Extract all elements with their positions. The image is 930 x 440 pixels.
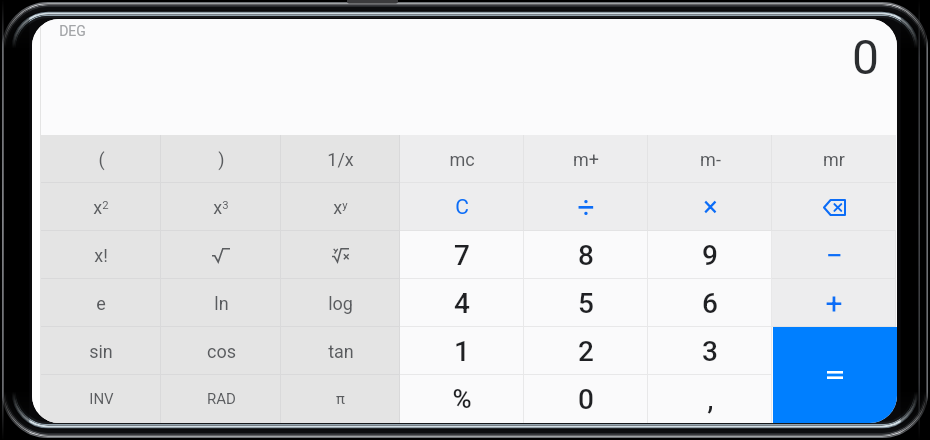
button[interactable]: mr	[772, 135, 896, 183]
button[interactable]: +	[772, 279, 896, 327]
staticText: 8	[578, 239, 594, 272]
staticText: 5	[578, 287, 594, 320]
button[interactable]: m+	[524, 135, 648, 183]
staticText: x3	[213, 197, 229, 218]
button[interactable]: 1	[400, 327, 524, 375]
staticText: x2	[93, 197, 109, 218]
staticText: sin	[89, 341, 113, 362]
button[interactable]: 2	[524, 327, 648, 375]
staticText: 0	[578, 383, 594, 416]
staticText: 0	[852, 29, 879, 85]
staticText: 3	[702, 335, 718, 368]
staticText: log	[328, 293, 353, 314]
button[interactable]: log	[281, 279, 400, 327]
button[interactable]: mc	[400, 135, 524, 183]
button[interactable]: ,	[648, 375, 772, 423]
staticText: ÷	[577, 190, 595, 225]
button[interactable]: sin	[41, 327, 161, 375]
staticText: π	[336, 390, 345, 408]
button[interactable]: 3	[648, 327, 772, 375]
staticText: m+	[573, 149, 599, 170]
button[interactable]: 5	[524, 279, 648, 327]
staticText: 1/x	[327, 149, 354, 170]
button[interactable]: RAD	[161, 375, 281, 423]
button[interactable]: Square root	[161, 231, 281, 279]
button[interactable]: x!	[41, 231, 161, 279]
staticText: +	[825, 286, 843, 321]
staticText: cos	[207, 341, 236, 362]
button[interactable]: x3	[161, 183, 281, 231]
button[interactable]: INV	[41, 375, 161, 423]
button[interactable]: 4	[400, 279, 524, 327]
button[interactable]: (	[41, 135, 161, 183]
staticText: %	[452, 384, 472, 414]
button[interactable]: 9	[648, 231, 772, 279]
button[interactable]: x2	[41, 183, 161, 231]
staticText: x!	[94, 245, 108, 266]
button[interactable]: 7	[400, 231, 524, 279]
button[interactable]: )	[161, 135, 281, 183]
staticText: INV	[89, 390, 114, 408]
staticText: DEG	[59, 23, 86, 39]
staticText: 2	[578, 335, 594, 368]
button[interactable]: C	[400, 183, 524, 231]
staticText: RAD	[207, 390, 236, 408]
button[interactable]: y-th root of x	[281, 231, 400, 279]
staticText: −	[825, 238, 843, 273]
staticText: (	[98, 149, 105, 170]
button[interactable]: 6	[648, 279, 772, 327]
staticText: xy	[333, 197, 348, 218]
staticText: e	[96, 293, 106, 314]
button[interactable]: xy	[281, 183, 400, 231]
staticText: 6	[702, 287, 718, 320]
staticText: )	[218, 149, 225, 170]
staticText: 7	[454, 239, 470, 272]
button[interactable]: −	[772, 231, 896, 279]
button[interactable]: 0	[524, 375, 648, 423]
button[interactable]: π	[281, 375, 400, 423]
button[interactable]: Backspace	[772, 183, 896, 231]
button[interactable]: 1/x	[281, 135, 400, 183]
staticText: mr	[823, 149, 845, 170]
staticText: tan	[328, 341, 354, 362]
button[interactable]: tan	[281, 327, 400, 375]
staticText: mc	[449, 149, 475, 170]
button[interactable]: %	[400, 375, 524, 423]
staticText: ×	[703, 191, 718, 223]
button[interactable]: ×	[648, 183, 772, 231]
staticText: 1	[454, 335, 470, 368]
button[interactable]: ln	[161, 279, 281, 327]
button[interactable]: ÷	[524, 183, 648, 231]
button[interactable]: cos	[161, 327, 281, 375]
staticText: ln	[214, 293, 229, 314]
button[interactable]: Equals	[773, 327, 897, 423]
button[interactable]: m-	[648, 135, 772, 183]
button[interactable]: e	[41, 279, 161, 327]
staticText: 9	[702, 239, 718, 272]
staticText: ,	[707, 383, 714, 416]
staticText: C	[455, 195, 469, 220]
staticText: m-	[700, 149, 721, 170]
button[interactable]: 8	[524, 231, 648, 279]
staticText: 4	[454, 287, 470, 320]
